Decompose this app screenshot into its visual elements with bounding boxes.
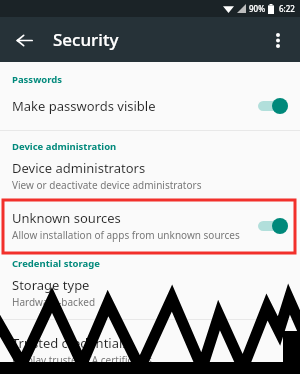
button[interactable]: Toggle xyxy=(258,218,288,234)
staticText: 90% xyxy=(249,3,265,14)
staticText: Display trusted CA certificates xyxy=(12,353,152,367)
staticText: Unknown sources xyxy=(12,209,121,227)
staticText: 6:22 xyxy=(279,3,295,14)
button[interactable]: More options xyxy=(262,24,294,56)
staticText: Make passwords visible xyxy=(12,97,156,115)
staticText: Trusted credentials xyxy=(12,334,129,352)
button[interactable]: Device administrators xyxy=(0,155,300,196)
staticText: Passwords xyxy=(12,73,63,86)
button[interactable]: Storage type xyxy=(0,272,300,313)
button[interactable]: Toggle xyxy=(258,98,288,114)
staticText: Hardware-backed xyxy=(12,295,96,309)
staticText: View or deactivate device administrators xyxy=(12,178,202,192)
staticText: Credential storage xyxy=(12,257,100,270)
staticText: Device administrators xyxy=(12,159,146,177)
button[interactable]: Trusted credentials xyxy=(0,330,300,371)
staticText: Allow installation of apps from unknown … xyxy=(12,228,240,242)
staticText: Storage type xyxy=(12,276,90,294)
button[interactable]: Make passwords visible xyxy=(0,88,300,124)
staticText: Device administration xyxy=(12,140,117,153)
staticText: Security xyxy=(53,28,119,51)
button[interactable]: Unknown sources xyxy=(0,206,300,245)
button[interactable]: Back xyxy=(8,24,40,56)
